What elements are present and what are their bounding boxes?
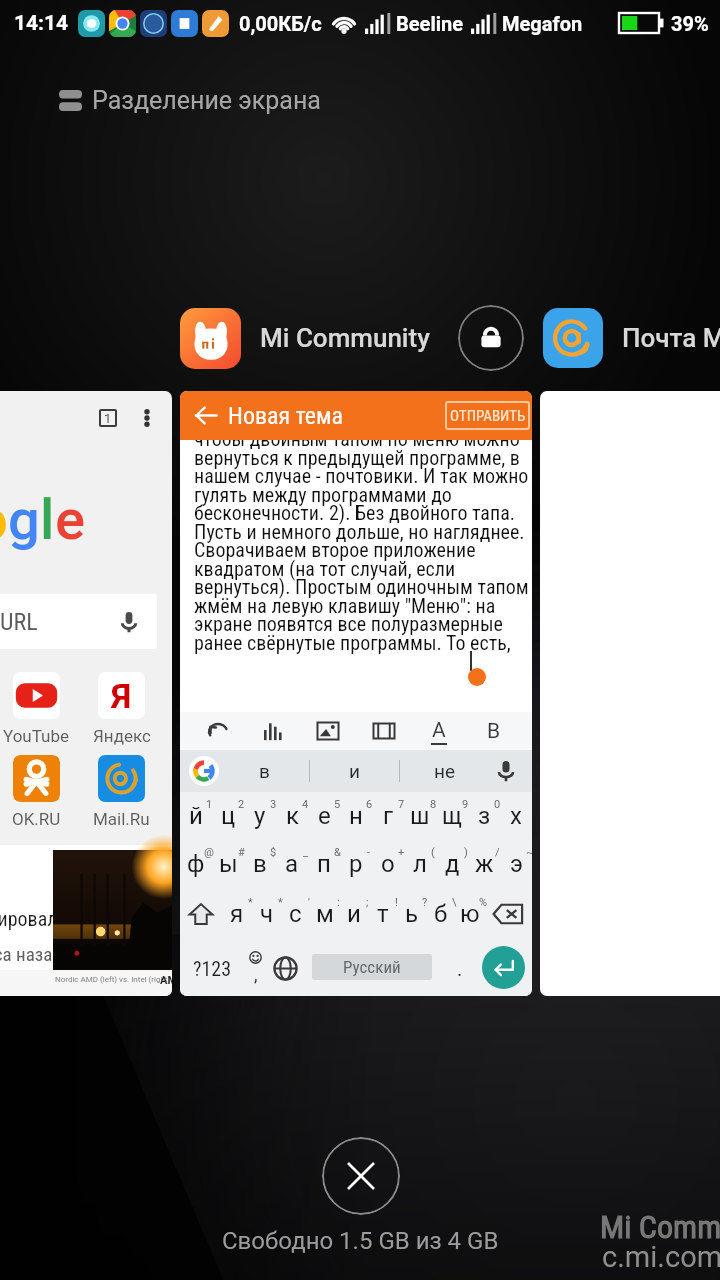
staticText: OK.RU bbox=[12, 809, 61, 829]
button[interactable]: и bbox=[339, 888, 368, 940]
button[interactable]: п bbox=[308, 840, 340, 888]
staticText: 39% bbox=[671, 12, 709, 35]
staticText: e bbox=[55, 487, 86, 553]
button[interactable]: ш bbox=[404, 792, 436, 840]
button[interactable]: б bbox=[426, 888, 455, 940]
button[interactable]: chart bbox=[256, 714, 290, 748]
button[interactable]: ч bbox=[252, 888, 281, 940]
staticText: URL bbox=[0, 608, 38, 636]
staticText: с bbox=[289, 900, 302, 928]
button[interactable]: с bbox=[281, 888, 310, 940]
staticText: ь bbox=[405, 900, 419, 928]
button[interactable]: у bbox=[244, 792, 276, 840]
staticText: бесконечности. 2). Без двойного тапа. bbox=[194, 501, 532, 524]
staticText: ~ bbox=[526, 846, 532, 859]
staticText: _ bbox=[303, 846, 308, 859]
button[interactable]: , bbox=[238, 940, 272, 996]
staticText: Почта M bbox=[622, 323, 720, 353]
staticText: ф bbox=[187, 850, 205, 878]
button[interactable]: й bbox=[180, 792, 212, 840]
button[interactable]: е bbox=[308, 792, 340, 840]
staticText: е bbox=[318, 802, 331, 830]
button[interactable]: YouTube bbox=[0, 672, 76, 746]
button[interactable]: Lock app bbox=[458, 305, 524, 371]
button[interactable]: х bbox=[500, 792, 532, 840]
button[interactable]: ?123 bbox=[183, 940, 241, 996]
staticText: в bbox=[259, 760, 270, 782]
button[interactable] bbox=[540, 391, 720, 996]
staticText: Megafon bbox=[502, 12, 583, 35]
staticText: AMI bbox=[160, 974, 172, 987]
button[interactable]: р bbox=[340, 840, 372, 888]
button[interactable]: Разделение экрана bbox=[59, 79, 321, 121]
button[interactable]: OK.RU bbox=[0, 755, 76, 829]
button[interactable]: Яндекс bbox=[82, 672, 161, 746]
button[interactable]: я bbox=[222, 888, 252, 940]
button[interactable]: Backspace bbox=[484, 888, 532, 940]
button[interactable]: ОТПРАВИТЬ bbox=[445, 401, 530, 430]
button[interactable]: Mail.Ru bbox=[543, 308, 603, 368]
button[interactable]: д bbox=[436, 840, 468, 888]
staticText: Mi Community bbox=[260, 323, 430, 353]
button[interactable]: 1 bbox=[0, 391, 172, 996]
button[interactable]: ю bbox=[455, 888, 484, 940]
button[interactable]: з bbox=[468, 792, 500, 840]
button[interactable]: о bbox=[372, 840, 404, 888]
button[interactable]: ж bbox=[468, 840, 500, 888]
button[interactable]: Enter bbox=[482, 946, 525, 989]
button[interactable]: Back bbox=[195, 405, 217, 426]
button[interactable]: а bbox=[276, 840, 308, 888]
staticText: Nordic AMD (left) vs. Intel (right) bbox=[55, 975, 171, 984]
button[interactable]: щ bbox=[436, 792, 468, 840]
button[interactable]: н bbox=[340, 792, 372, 840]
button[interactable]: в bbox=[244, 840, 276, 888]
staticText: . bbox=[457, 957, 463, 980]
staticText: 3 bbox=[270, 798, 277, 811]
staticText: б bbox=[434, 900, 448, 928]
button[interactable]: к bbox=[276, 792, 308, 840]
staticText: в bbox=[253, 850, 267, 878]
button[interactable]: undo bbox=[201, 714, 235, 748]
button[interactable]: Voice input bbox=[489, 754, 523, 788]
button[interactable]: ц bbox=[212, 792, 244, 840]
staticText: $ bbox=[270, 846, 277, 859]
button[interactable]: ь bbox=[397, 888, 426, 940]
button[interactable]: в bbox=[219, 750, 309, 792]
button[interactable]: Back bbox=[180, 391, 532, 996]
button[interactable]: video bbox=[367, 714, 401, 748]
button[interactable]: и bbox=[310, 750, 399, 792]
staticText: ОТПРАВИТЬ bbox=[450, 407, 526, 425]
staticText: o bbox=[0, 487, 8, 553]
button[interactable]: ф bbox=[180, 840, 212, 888]
button[interactable]: Change language bbox=[266, 940, 304, 996]
button[interactable]: л bbox=[404, 840, 436, 888]
button[interactable]: Русский bbox=[312, 954, 432, 980]
button[interactable]: Mail.Ru bbox=[82, 755, 161, 829]
staticText: ) bbox=[464, 846, 468, 859]
button[interactable]: Close all apps bbox=[322, 1137, 400, 1215]
button[interactable]: A bbox=[422, 714, 456, 748]
button[interactable]: ы bbox=[212, 840, 244, 888]
staticText: 6 bbox=[366, 798, 373, 811]
staticText: ранее свёрнутые программы. То есть, bbox=[194, 631, 532, 654]
staticText: ш bbox=[410, 802, 430, 830]
staticText: & bbox=[334, 846, 341, 859]
staticText: Лента.ру · 2 часа назад bbox=[0, 943, 63, 965]
staticText: о bbox=[381, 850, 395, 878]
staticText: ы bbox=[219, 850, 238, 878]
button[interactable]: Shift bbox=[180, 888, 222, 940]
staticText: 0 bbox=[494, 798, 501, 811]
button[interactable]: т bbox=[368, 888, 397, 940]
button[interactable]: . bbox=[442, 940, 478, 996]
staticText: , bbox=[254, 964, 258, 985]
button[interactable]: г bbox=[372, 792, 404, 840]
button[interactable]: Mi Community bbox=[180, 308, 241, 369]
button[interactable]: URL bbox=[0, 594, 157, 649]
button[interactable]: не bbox=[400, 750, 489, 792]
button[interactable]: м bbox=[310, 888, 339, 940]
staticText: Mi Comm bbox=[600, 1208, 720, 1246]
staticText: не bbox=[434, 760, 456, 782]
button[interactable]: B bbox=[477, 714, 511, 748]
button[interactable]: image bbox=[311, 714, 345, 748]
button[interactable]: э bbox=[500, 840, 532, 888]
